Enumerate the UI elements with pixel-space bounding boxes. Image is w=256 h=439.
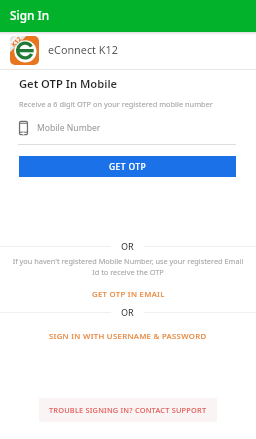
button[interactable]: TROUBLE SIGNING IN? CONTACT SUPPORT (39, 398, 217, 422)
staticText: If you haven't registered Mobile Number,… (4, 256, 252, 278)
staticText: GET OTP (109, 161, 147, 173)
button[interactable]: GET OTP IN EMAIL (0, 287, 256, 302)
staticText: OR (121, 240, 134, 252)
button[interactable]: SIGN IN WITH USERNAME & PASSWORD (0, 329, 256, 344)
staticText: Receive a 6 digit OTP on your registered… (19, 99, 213, 109)
staticText: eConnect K12 (48, 42, 118, 57)
button[interactable]: GET OTP (19, 156, 236, 177)
staticText: Mobile Number (37, 122, 101, 134)
staticText: TROUBLE SIGNING IN? CONTACT SUPPORT (49, 405, 207, 415)
staticText: SIGN IN WITH USERNAME & PASSWORD (49, 331, 207, 342)
staticText: GET OTP IN EMAIL (92, 289, 165, 300)
staticText: OR (121, 306, 134, 318)
other: eConnect K12 logo (10, 36, 39, 65)
staticText: K12 (9, 34, 23, 48)
staticText: Get OTP In Mobile (19, 76, 118, 91)
staticText: Sign In (10, 7, 50, 23)
